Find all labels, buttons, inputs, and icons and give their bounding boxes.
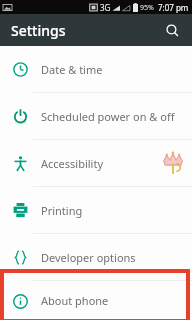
button[interactable]: Scheduled power on & off (0, 93, 192, 139)
staticText: Developer options (41, 250, 136, 265)
button[interactable]: Date & time (0, 46, 192, 92)
button[interactable]: Search (160, 18, 184, 42)
staticText: Scheduled power on & off (41, 109, 175, 124)
staticText: 3G (100, 2, 111, 13)
staticText: 95% (140, 3, 154, 13)
staticText: Date & time (41, 62, 103, 77)
staticText: Settings (11, 21, 66, 40)
staticText: 7:07 pm (158, 2, 189, 13)
staticText: Accessibility (41, 156, 104, 171)
staticText: Printing (41, 203, 83, 218)
button[interactable]: Accessibility (0, 140, 192, 186)
button[interactable]: Developer options (0, 234, 192, 280)
staticText: About phone (41, 293, 109, 308)
button[interactable]: Printing (0, 187, 192, 233)
button[interactable]: About phone (0, 281, 192, 320)
